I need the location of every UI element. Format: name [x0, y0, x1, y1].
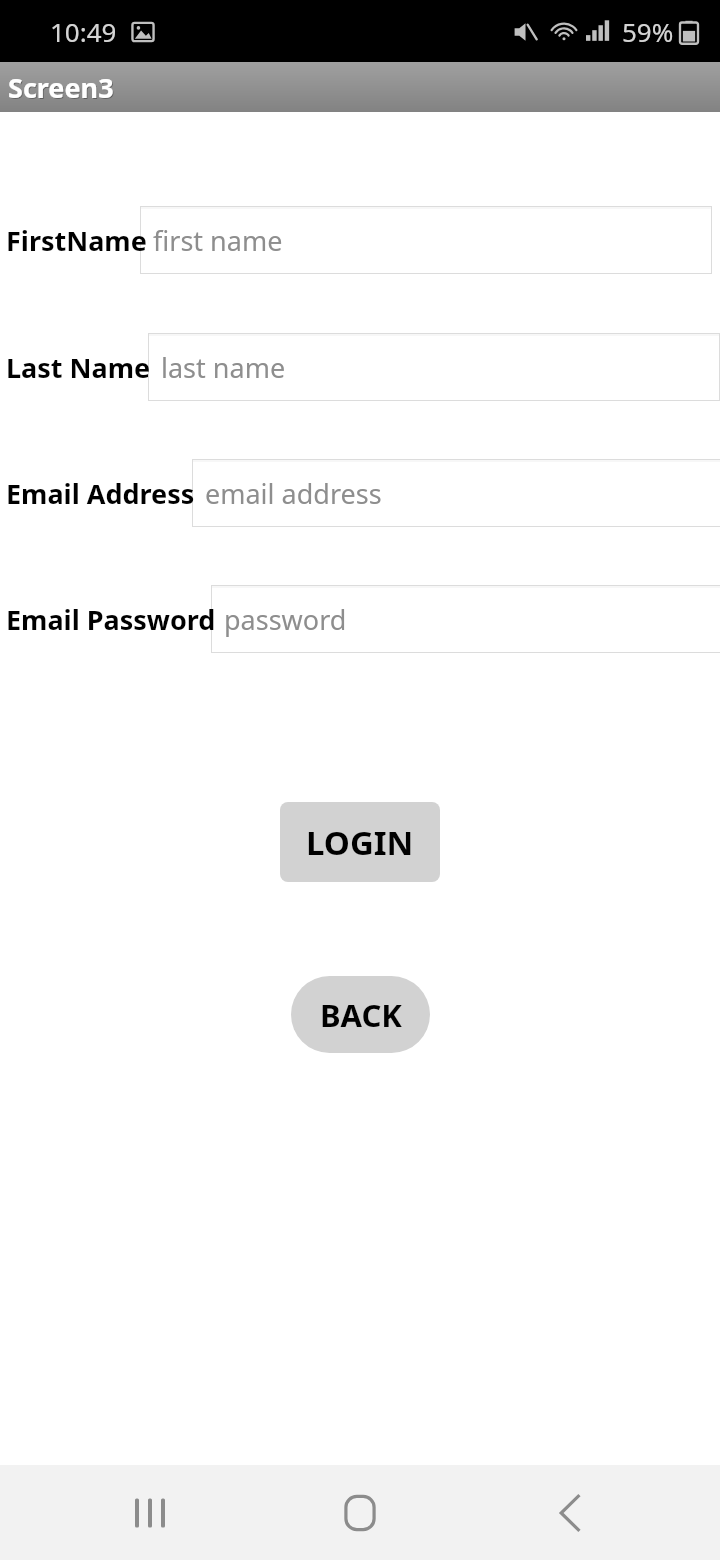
- button[interactable]: BACK: [291, 976, 430, 1053]
- button[interactable]: Home: [300, 1465, 420, 1560]
- button[interactable]: Recent apps: [90, 1465, 210, 1560]
- staticText: FirstName: [6, 222, 147, 259]
- staticText: password: [224, 601, 347, 638]
- staticText: BACK: [320, 994, 402, 1036]
- staticText: Email Address: [6, 475, 195, 512]
- staticText: Screen3: [8, 69, 114, 106]
- staticText: email address: [205, 475, 382, 512]
- staticText: Email Password: [6, 601, 216, 638]
- button[interactable]: last name: [148, 333, 720, 401]
- button[interactable]: first name: [140, 206, 712, 274]
- button[interactable]: LOGIN: [280, 802, 440, 882]
- button[interactable]: password: [211, 585, 720, 653]
- staticText: 59%: [622, 14, 674, 49]
- button[interactable]: Back: [510, 1465, 630, 1560]
- staticText: first name: [153, 222, 283, 259]
- staticText: last name: [161, 349, 286, 386]
- staticText: Screen3: [9, 70, 115, 107]
- staticText: Last Name: [6, 349, 151, 386]
- staticText: 10:49: [50, 14, 117, 49]
- button[interactable]: email address: [192, 459, 720, 527]
- staticText: LOGIN: [306, 820, 414, 865]
